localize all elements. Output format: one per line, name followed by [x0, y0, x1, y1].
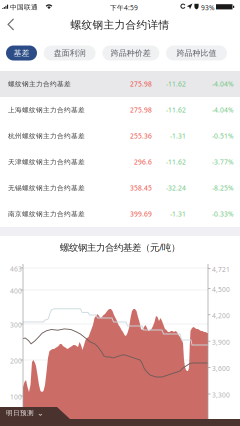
- staticText: -3.77%: [212, 158, 234, 166]
- button[interactable]: 基差: [6, 45, 37, 60]
- button[interactable]: 明日预测: [0, 407, 60, 419]
- staticText: 明日预测: [6, 409, 34, 417]
- staticText: 275.98: [130, 106, 152, 114]
- staticText: 4,721: [212, 265, 230, 274]
- button[interactable]: Back: [0, 17, 22, 32]
- staticText: 200: [10, 356, 22, 365]
- staticText: -8.25%: [212, 184, 234, 192]
- staticText: 3,300: [212, 390, 230, 399]
- staticText: 基差: [13, 48, 29, 58]
- staticText: -11.62: [166, 80, 186, 88]
- button[interactable]: 上海螺纹钢主力合约基差: [0, 97, 240, 123]
- staticText: -0.51%: [212, 132, 234, 140]
- button[interactable]: 杭州螺纹钢主力合约基差: [0, 123, 240, 149]
- staticText: 杭州螺纹钢主力合约基差: [8, 132, 85, 140]
- staticText: 400: [10, 286, 22, 295]
- button[interactable]: 跨品种比值: [166, 45, 227, 60]
- staticText: -0.33%: [212, 210, 234, 218]
- staticText: -1.31: [170, 132, 186, 140]
- staticText: 100: [10, 392, 22, 401]
- staticText: 3,600: [212, 364, 230, 373]
- staticText: 296.6: [134, 158, 152, 166]
- staticText: 螺纹钢主力合约详情: [70, 18, 169, 31]
- staticText: 93%: [201, 3, 215, 12]
- staticText: -32.24: [166, 184, 186, 192]
- button[interactable]: 天津螺纹钢主力合约基差: [0, 149, 240, 175]
- staticText: 3,900: [212, 338, 230, 347]
- staticText: -11.62: [166, 106, 186, 114]
- staticText: 跨品种价差: [111, 48, 151, 58]
- staticText: -11.62: [166, 158, 186, 166]
- staticText: 463: [10, 264, 22, 273]
- staticText: 南京螺纹钢主力合约基差: [8, 210, 85, 218]
- staticText: 3,000: [212, 417, 230, 426]
- button[interactable]: 螺纹钢主力合约基差: [0, 71, 240, 97]
- button[interactable]: 跨品种价差: [102, 45, 159, 60]
- staticText: -1.31: [170, 210, 186, 218]
- staticText: 螺纹钢主力合约基差（元/吨）: [60, 241, 180, 253]
- staticText: 天津螺纹钢主力合约基差: [8, 158, 85, 166]
- staticText: 358.45: [130, 184, 152, 192]
- staticText: 4,500: [212, 285, 230, 294]
- button[interactable]: 无锡螺纹钢主力合约基差: [0, 175, 240, 201]
- staticText: 无锡螺纹钢主力合约基差: [8, 184, 85, 192]
- staticText: ⌄: [37, 408, 44, 418]
- staticText: 跨品种比值: [176, 48, 216, 58]
- staticText: 螺纹钢主力合约基差: [8, 80, 71, 88]
- staticText: -4.04%: [212, 80, 234, 88]
- staticText: 399.69: [130, 210, 152, 218]
- staticText: -4.04%: [212, 106, 234, 114]
- button[interactable]: 南京螺纹钢主力合约基差: [0, 201, 240, 227]
- staticText: 盘面利润: [54, 48, 86, 58]
- staticText: 4,200: [212, 311, 230, 320]
- staticText: 中国联通: [10, 3, 38, 11]
- staticText: 下午4:59: [110, 3, 138, 12]
- staticText: 275.98: [130, 80, 152, 88]
- staticText: 255.36: [130, 132, 152, 140]
- button[interactable]: 盘面利润: [44, 45, 96, 60]
- staticText: 上海螺纹钢主力合约基差: [8, 106, 85, 114]
- staticText: 300: [10, 320, 22, 329]
